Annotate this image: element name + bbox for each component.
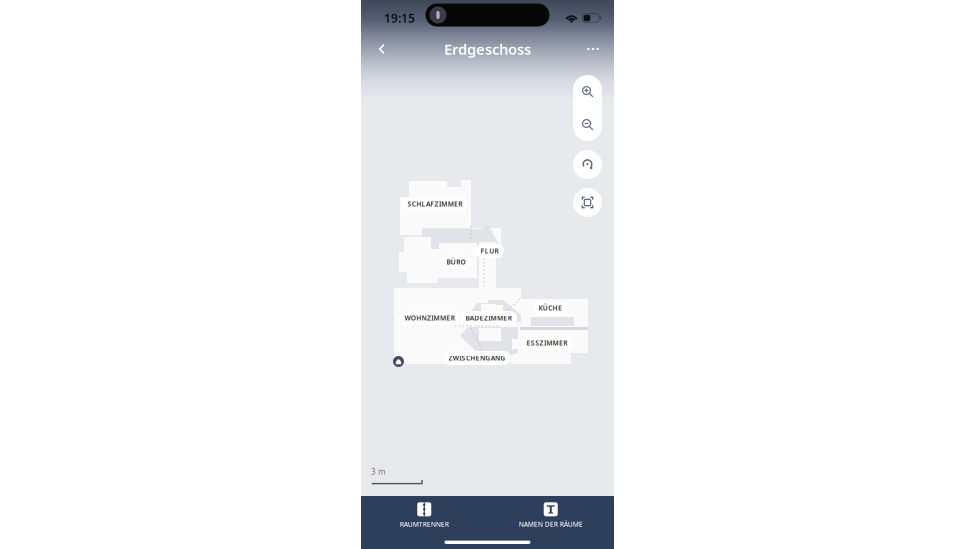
staticText: RAUMTRENNER <box>400 520 449 529</box>
staticText: WOHNZIMMER <box>404 314 455 322</box>
staticText: BÜRO <box>446 258 465 266</box>
button[interactable]: Zoom in <box>573 75 602 108</box>
staticText: ZWISCHENGANG <box>448 354 505 362</box>
button[interactable]: NAMEN DER RÄUME <box>487 501 614 530</box>
staticText: KÜCHE <box>538 304 562 312</box>
staticText: BADEZIMMER <box>465 314 512 322</box>
button[interactable]: More options <box>582 38 604 60</box>
staticText: ESSZIMMER <box>526 339 567 347</box>
staticText: Erdgeschoss <box>444 39 531 59</box>
staticText: 19:15 <box>384 10 415 26</box>
button[interactable]: RAUMTRENNER <box>361 501 487 530</box>
staticText: FLUR <box>480 247 498 255</box>
button[interactable]: Back <box>371 38 393 60</box>
staticText: 3 m <box>371 466 385 477</box>
button[interactable]: Rotate <box>573 150 602 179</box>
button[interactable]: Fit to screen <box>573 188 602 217</box>
staticText: SCHLAFZIMMER <box>407 200 462 208</box>
button[interactable]: Zoom out <box>573 108 602 141</box>
staticText: NAMEN DER RÄUME <box>519 520 583 529</box>
